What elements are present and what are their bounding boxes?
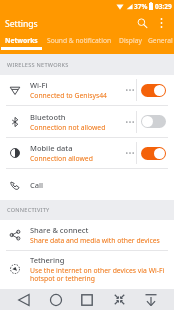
button[interactable]: Recents bbox=[74, 289, 100, 310]
button[interactable]: On bbox=[141, 84, 166, 97]
staticText: Use the internet on other devices via Wi… bbox=[30, 266, 170, 283]
button[interactable]: General bbox=[146, 34, 174, 54]
button[interactable]: Sound & notification bbox=[43, 34, 115, 54]
staticText: Connection allowed bbox=[30, 154, 93, 163]
button[interactable]: Networks bbox=[0, 34, 43, 54]
staticText: Networks bbox=[5, 36, 38, 45]
staticText: General bbox=[148, 36, 173, 45]
staticText: 03:29 bbox=[155, 2, 172, 11]
button[interactable]: Wi-Fi bbox=[0, 75, 174, 105]
button[interactable]: Call bbox=[0, 169, 174, 200]
staticText: Share & connect bbox=[30, 225, 89, 235]
staticText: Mobile data bbox=[30, 143, 73, 153]
staticText: Connected to Genisys44 bbox=[30, 91, 107, 100]
staticText: 37% bbox=[134, 2, 148, 11]
button[interactable]: More options bbox=[150, 12, 172, 34]
button[interactable]: Back bbox=[11, 289, 37, 310]
button[interactable]: Notifications bbox=[138, 289, 164, 310]
button[interactable]: Bluetooth bbox=[0, 106, 174, 137]
button[interactable]: Display bbox=[115, 34, 146, 54]
staticText: Connection not allowed bbox=[30, 123, 106, 132]
staticText: WIRELESS NETWORKS bbox=[7, 61, 69, 69]
staticText: Display bbox=[119, 36, 142, 45]
staticText: Wi-Fi bbox=[30, 80, 48, 90]
button[interactable]: On bbox=[141, 147, 166, 160]
staticText: Bluetooth bbox=[30, 112, 66, 122]
button[interactable]: Home bbox=[43, 289, 69, 310]
button[interactable]: Mobile data bbox=[0, 138, 174, 168]
button[interactable]: Split screen bbox=[107, 289, 132, 310]
staticText: Tethering bbox=[30, 255, 65, 265]
staticText: CONNECTIVITY bbox=[7, 206, 50, 214]
button[interactable]: Tethering bbox=[0, 251, 174, 287]
staticText: Sound & notification bbox=[47, 36, 112, 45]
button[interactable]: Share & connect bbox=[0, 220, 174, 250]
button[interactable]: Search bbox=[131, 12, 153, 34]
staticText: Share data and media with other devices bbox=[30, 236, 160, 245]
staticText: Call bbox=[30, 180, 44, 190]
button[interactable]: Off bbox=[141, 115, 166, 128]
staticText: Settings bbox=[5, 18, 38, 30]
